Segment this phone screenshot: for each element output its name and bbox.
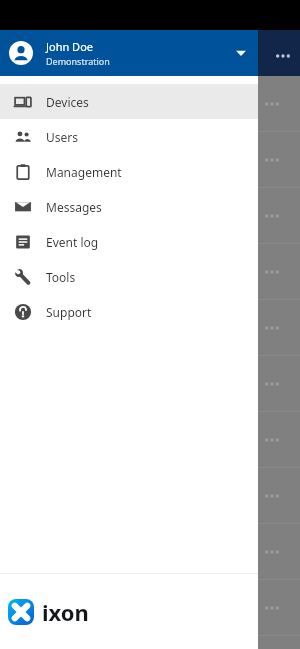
- button[interactable]: Users: [0, 119, 258, 154]
- button[interactable]: Tools: [0, 259, 258, 294]
- button[interactable]: Event log: [0, 224, 258, 259]
- button[interactable]: Management: [0, 154, 258, 189]
- button[interactable]: John Doe: [0, 30, 258, 76]
- button[interactable]: Messages: [0, 189, 258, 224]
- button[interactable]: [0, 244, 300, 300]
- staticText: John Doe: [46, 39, 94, 54]
- staticText: Event log: [46, 234, 99, 250]
- staticText: Devices: [46, 94, 89, 110]
- button[interactable]: More options: [272, 45, 294, 67]
- staticText: Demonstration: [46, 55, 110, 67]
- staticText: Tools: [46, 269, 76, 285]
- button[interactable]: [0, 76, 300, 132]
- button[interactable]: [0, 132, 300, 188]
- button[interactable]: Devices: [0, 84, 258, 119]
- staticText: Support: [46, 304, 92, 320]
- button[interactable]: [0, 300, 300, 356]
- button[interactable]: [0, 188, 300, 244]
- button[interactable]: [0, 524, 300, 580]
- staticText: Users: [46, 129, 78, 145]
- staticText: Management: [46, 164, 122, 180]
- button[interactable]: [0, 412, 300, 468]
- button[interactable]: [0, 580, 300, 636]
- button[interactable]: Support: [0, 294, 258, 329]
- staticText: Messages: [46, 199, 102, 215]
- button[interactable]: [0, 468, 300, 524]
- staticText: ixon: [42, 597, 89, 627]
- button[interactable]: [0, 356, 300, 412]
